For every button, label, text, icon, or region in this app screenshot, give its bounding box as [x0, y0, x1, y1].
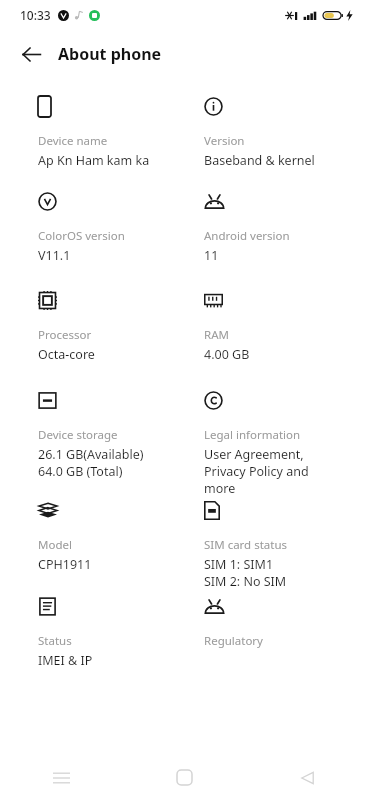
- button[interactable]: Home: [123, 755, 246, 800]
- staticText: V11.1: [38, 247, 71, 264]
- button[interactable]: Version: [184, 95, 369, 190]
- button[interactable]: Device name: [0, 95, 184, 190]
- staticText: RAM: [204, 327, 229, 343]
- staticText: ColorOS version: [38, 228, 125, 244]
- button[interactable]: SIM card status: [184, 499, 369, 595]
- button[interactable]: Processor: [0, 289, 184, 389]
- staticText: Model: [38, 537, 72, 553]
- staticText: SIM 2: No SIM: [204, 573, 287, 590]
- staticText: Status: [38, 633, 72, 649]
- button[interactable]: RAM: [184, 289, 369, 389]
- staticText: 10:33: [20, 7, 51, 23]
- staticText: IMEI & IP: [38, 652, 93, 669]
- staticText: Version: [204, 133, 245, 149]
- button[interactable]: ColorOS version: [0, 190, 184, 289]
- staticText: Android version: [204, 228, 290, 244]
- staticText: 11: [204, 247, 219, 264]
- staticText: Device name: [38, 133, 108, 149]
- staticText: CPH1911: [38, 556, 92, 573]
- button[interactable]: Status: [0, 595, 184, 675]
- staticText: Legal information: [204, 427, 301, 443]
- button[interactable]: Regulatory: [184, 595, 369, 675]
- staticText: User Agreement,: [204, 446, 304, 463]
- staticText: Baseband & kernel: [204, 152, 315, 169]
- button[interactable]: Back: [10, 33, 52, 75]
- staticText: 4.00 GB: [204, 346, 250, 363]
- staticText: Octa-core: [38, 346, 95, 363]
- staticText: Processor: [38, 327, 92, 343]
- button[interactable]: Legal information: [184, 389, 369, 499]
- staticText: Privacy Policy and: [204, 463, 309, 480]
- staticText: Ap Kn Ham kam ka: [38, 152, 150, 169]
- staticText: SIM card status: [204, 537, 288, 553]
- staticText: Device storage: [38, 427, 118, 443]
- staticText: About phone: [58, 43, 162, 65]
- staticText: SIM 1: SIM1: [204, 556, 274, 573]
- staticText: 64.0 GB (Total): [38, 463, 123, 480]
- button[interactable]: Android version: [184, 190, 369, 289]
- staticText: more: [204, 480, 236, 497]
- staticText: Regulatory: [204, 633, 263, 649]
- button[interactable]: Recents: [0, 755, 123, 800]
- staticText: 26.1 GB(Available): [38, 446, 144, 463]
- button[interactable]: Back: [246, 755, 369, 800]
- button[interactable]: Device storage: [0, 389, 184, 499]
- button[interactable]: Model: [0, 499, 184, 595]
